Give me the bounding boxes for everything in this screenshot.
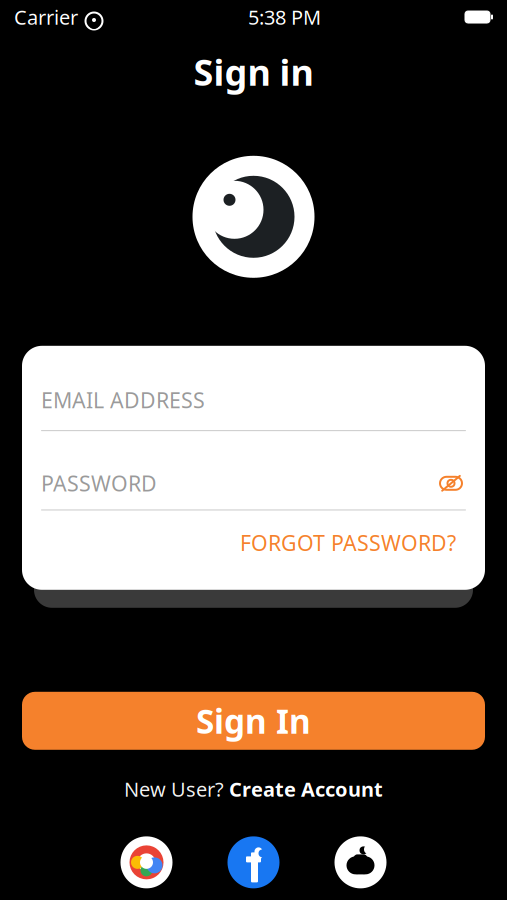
staticText: Sign In <box>196 699 311 743</box>
staticText: Create Account <box>229 776 383 802</box>
button[interactable]: New User? <box>112 770 395 808</box>
staticText: Carrier <box>14 4 78 30</box>
button[interactable]: FORGOT PASSWORD? <box>236 522 460 563</box>
button[interactable]: Show password <box>436 471 466 495</box>
button[interactable]: Sign in with Apple <box>334 836 386 888</box>
button[interactable]: Sign in with Facebook <box>227 836 279 888</box>
staticText: FORGOT PASSWORD? <box>240 528 456 557</box>
staticText: Sign in <box>193 48 313 96</box>
staticText: 5:38 PM <box>248 4 321 30</box>
staticText: EMAIL ADDRESS <box>41 386 205 414</box>
staticText: PASSWORD <box>41 469 157 497</box>
staticText: New User? <box>124 776 224 802</box>
button[interactable]: Sign in with Google <box>120 836 172 888</box>
button[interactable]: Sign In <box>22 692 485 750</box>
